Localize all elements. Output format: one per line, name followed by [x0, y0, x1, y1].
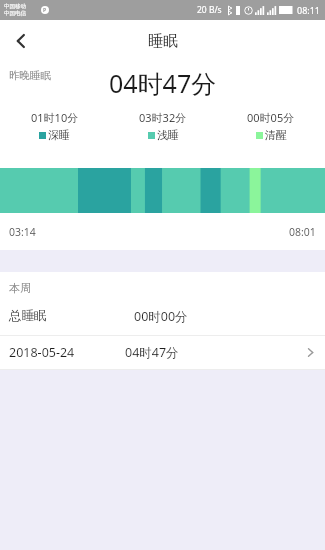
button[interactable]: Back: [0, 20, 42, 62]
staticText: 03时32分: [139, 110, 187, 125]
staticText: 03:14: [9, 225, 36, 239]
staticText: 2018-05-24: [9, 344, 75, 361]
staticText: 中国电信: [4, 10, 26, 17]
staticText: 中国移动: [4, 3, 26, 10]
staticText: 20 B/s: [197, 4, 222, 16]
staticText: 08:11: [297, 4, 321, 16]
staticText: 04时47分: [125, 344, 179, 361]
staticText: 本周: [9, 281, 31, 295]
button[interactable]: 2018-05-24: [0, 336, 325, 369]
staticText: 昨晚睡眠: [9, 69, 51, 82]
staticText: 睡眠: [148, 32, 178, 51]
staticText: 04时47分: [109, 66, 217, 100]
staticText: 00时00分: [134, 308, 188, 325]
staticText: 深睡: [48, 128, 70, 142]
staticText: 01时10分: [31, 110, 79, 125]
staticText: 08:01: [289, 225, 316, 239]
staticText: 00时05分: [247, 110, 295, 125]
staticText: 总睡眠: [9, 308, 47, 324]
staticText: 浅睡: [157, 128, 179, 142]
staticText: 清醒: [265, 128, 287, 142]
staticText: P: [43, 7, 47, 14]
